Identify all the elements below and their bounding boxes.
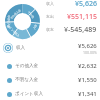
staticText: ¥5,626 [78, 42, 97, 50]
staticText: ¥-545,489 [64, 25, 97, 34]
staticText: 収入 [16, 45, 26, 51]
staticText: ¥5,626 [75, 0, 97, 8]
staticText: 入金 [32, 23, 37, 29]
staticText: ¥1,341 [78, 90, 97, 98]
staticText: ¥1,550 [78, 76, 97, 84]
staticText: その他入金 [15, 63, 39, 69]
staticText: 収支 [46, 27, 54, 32]
staticText: ¥2,632 [78, 62, 97, 70]
button[interactable]: 不明な入金 [3, 73, 97, 87]
button[interactable]: 収入 [3, 41, 97, 55]
staticText: 支出 [46, 14, 54, 19]
button[interactable]: その他入金 [3, 59, 97, 73]
staticText: ポイント収入 [15, 91, 43, 97]
staticText: その他入金 [9, 8, 21, 19]
staticText: 不明な入金 [8, 15, 11, 29]
button[interactable]: ポイント収入 [3, 87, 97, 100]
staticText: ¥551,115 [67, 12, 97, 21]
staticText: 100.00% [83, 50, 97, 55]
staticText: その他 [28, 10, 35, 18]
staticText: 不明な入金 [15, 77, 39, 83]
staticText: ポイント収入 [7, 24, 20, 37]
staticText: 収入 [46, 1, 54, 6]
